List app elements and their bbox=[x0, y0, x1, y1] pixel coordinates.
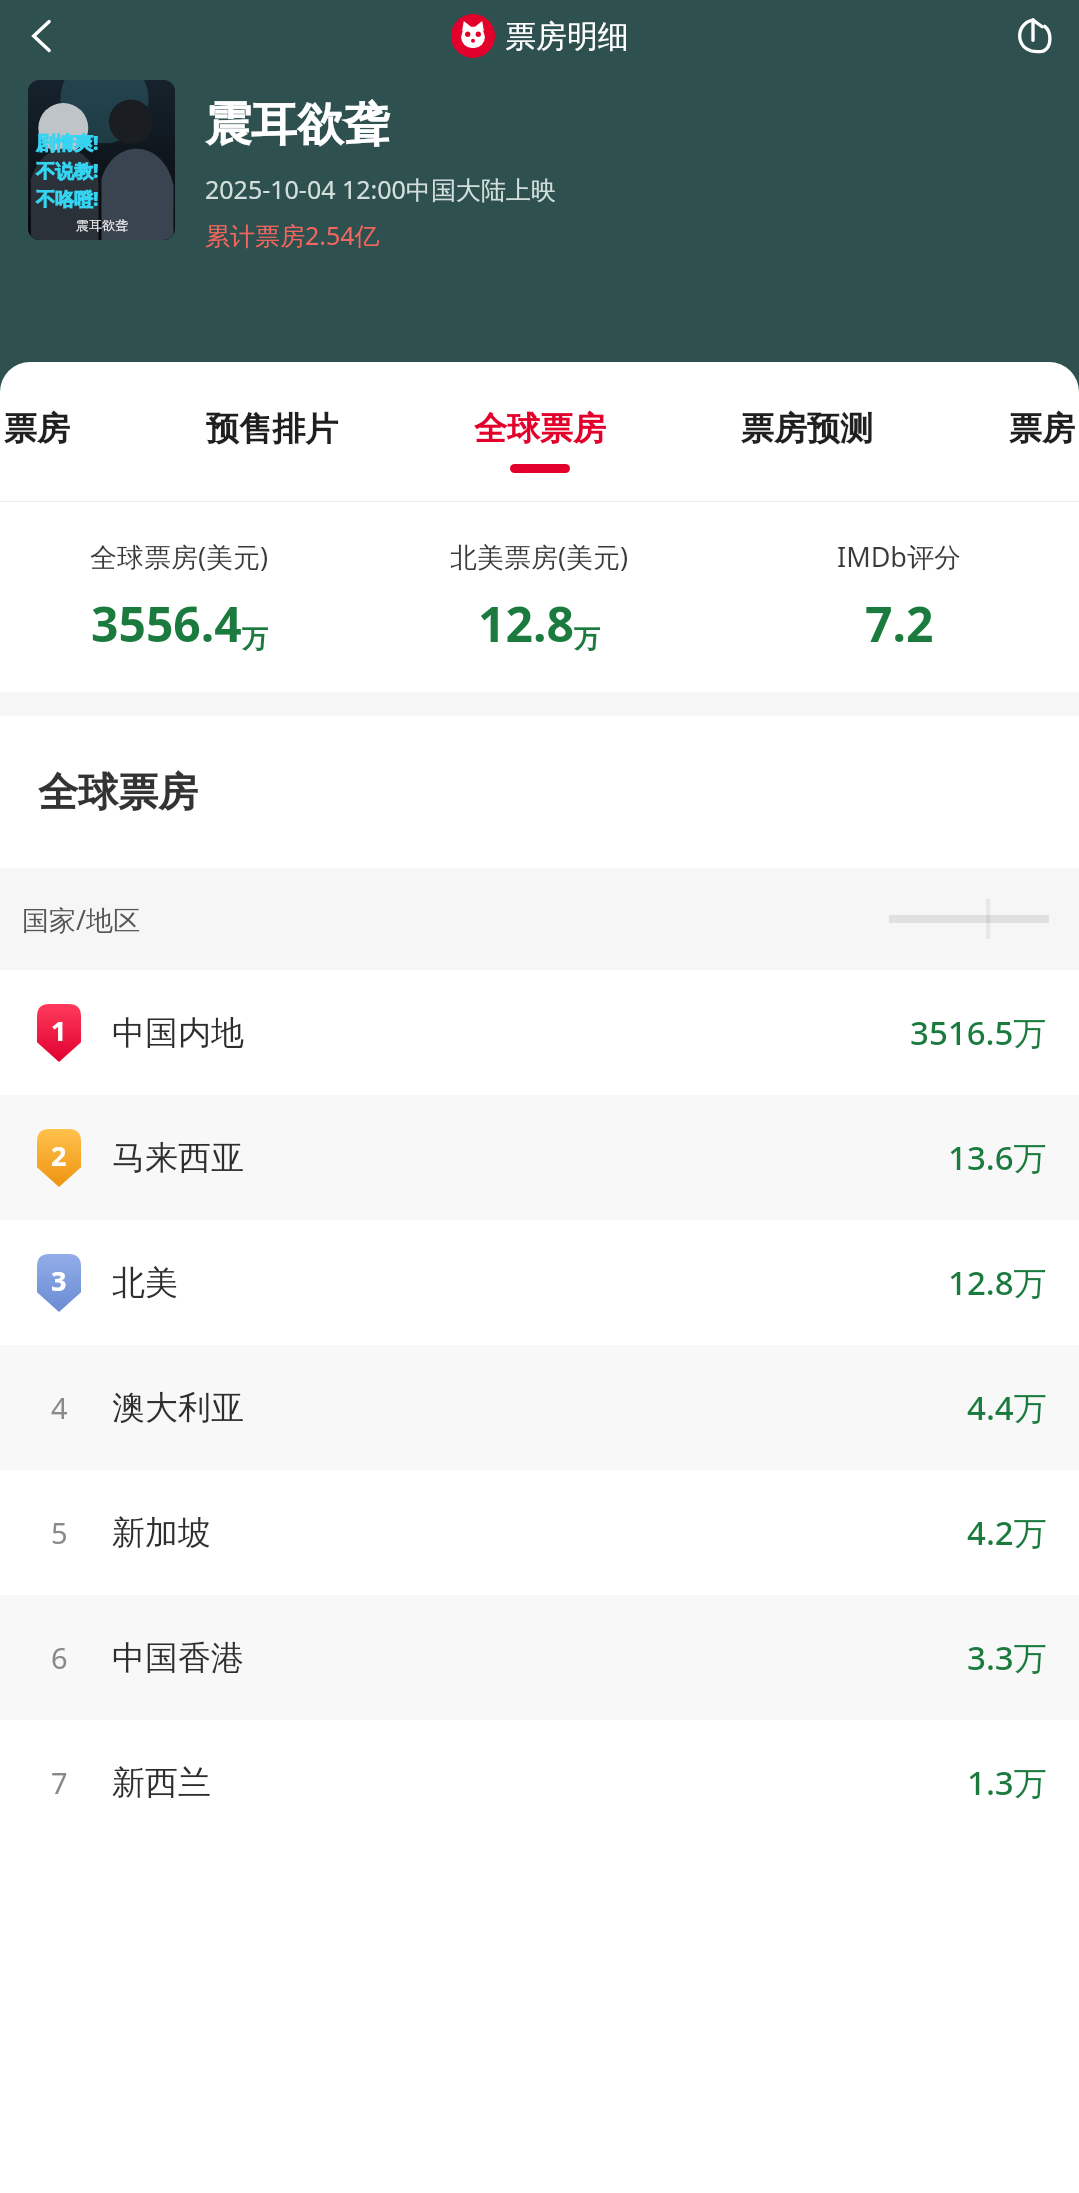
staticText: 2 bbox=[51, 1137, 67, 1174]
staticText: 6 bbox=[51, 1638, 68, 1677]
staticText: 震耳欲聋 bbox=[205, 96, 389, 154]
staticText: 票房 bbox=[1009, 408, 1075, 450]
staticText: 全球票房 bbox=[38, 767, 198, 817]
staticText: 票房 bbox=[4, 408, 70, 450]
staticText: 北美票房(美元) bbox=[450, 538, 629, 575]
staticText: 中国香港 bbox=[112, 1637, 244, 1679]
button[interactable]: Share bbox=[1001, 4, 1065, 68]
staticText: 中国内地 bbox=[112, 1012, 244, 1054]
staticText: IMDb评分 bbox=[837, 538, 961, 575]
staticText: 7.2 bbox=[865, 591, 934, 656]
staticText: 全球票房(美元) bbox=[90, 538, 269, 575]
staticText: 5 bbox=[51, 1513, 68, 1552]
button[interactable]: 1 bbox=[0, 970, 1079, 1095]
staticText: 2025-10-04 12:00中国大陆上映 bbox=[205, 172, 556, 206]
button[interactable]: 票房 bbox=[1009, 408, 1075, 450]
button[interactable]: 7 bbox=[0, 1720, 1079, 1845]
button[interactable]: 全球票房 bbox=[474, 408, 606, 473]
staticText: 马来西亚 bbox=[112, 1137, 244, 1179]
staticText: 万 bbox=[574, 623, 600, 656]
button[interactable]: 3 bbox=[0, 1220, 1079, 1345]
staticText: 4.4万 bbox=[967, 1385, 1047, 1430]
button[interactable]: Back bbox=[12, 6, 72, 66]
staticText: 4 bbox=[51, 1388, 68, 1427]
staticText: 震耳欲聋 bbox=[76, 217, 128, 233]
staticText: 7 bbox=[51, 1763, 68, 1802]
staticText: 累计票房2.54亿 bbox=[205, 218, 380, 252]
staticText: 4.2万 bbox=[967, 1510, 1047, 1555]
staticText: 12.8万 bbox=[948, 1260, 1047, 1305]
button[interactable]: 5 bbox=[0, 1470, 1079, 1595]
staticText: 预售排片 bbox=[206, 408, 338, 450]
staticText: 新加坡 bbox=[112, 1512, 211, 1554]
button[interactable]: 2 bbox=[0, 1095, 1079, 1220]
button[interactable]: 票房明细 bbox=[451, 14, 629, 58]
button[interactable]: 预售排片 bbox=[206, 408, 338, 450]
staticText: 票房预测 bbox=[741, 408, 873, 450]
staticText: 3516.5万 bbox=[910, 1010, 1047, 1055]
staticText: 全球票房 bbox=[474, 408, 606, 450]
staticText: 新西兰 bbox=[112, 1762, 211, 1804]
staticText: 1.3万 bbox=[967, 1760, 1047, 1805]
staticText: 1 bbox=[51, 1012, 67, 1049]
staticText: 剧情爽! bbox=[36, 130, 99, 156]
staticText: 北美 bbox=[112, 1262, 178, 1304]
staticText: 13.6万 bbox=[948, 1135, 1047, 1180]
staticText: 3556.4 bbox=[91, 591, 242, 656]
staticText: 票房明细 bbox=[505, 17, 629, 56]
staticText: 万 bbox=[242, 623, 268, 656]
staticText: 不咯噔! bbox=[36, 186, 99, 212]
staticText: 不说教! bbox=[36, 158, 99, 184]
button[interactable]: 4 bbox=[0, 1345, 1079, 1470]
staticText: 国家/地区 bbox=[22, 901, 141, 938]
button[interactable]: 票房预测 bbox=[741, 408, 873, 450]
staticText: 澳大利亚 bbox=[112, 1387, 244, 1429]
staticText: 12.8 bbox=[478, 591, 574, 656]
staticText: 3.3万 bbox=[967, 1635, 1047, 1680]
button[interactable]: 6 bbox=[0, 1595, 1079, 1720]
staticText: 3 bbox=[51, 1262, 67, 1299]
button[interactable]: 票房 bbox=[4, 408, 70, 450]
